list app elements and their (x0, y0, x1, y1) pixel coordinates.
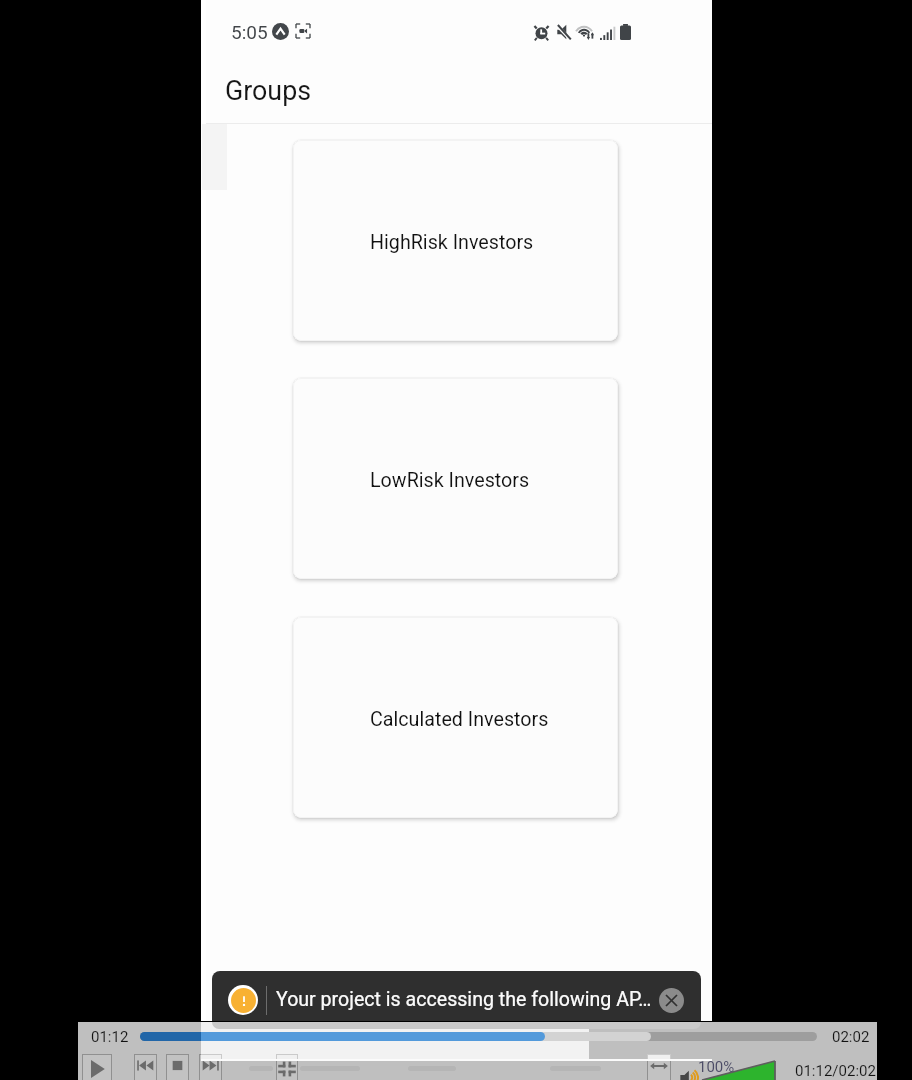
button[interactable]: Play (82, 1054, 112, 1080)
button[interactable]: Next (199, 1054, 222, 1080)
staticText: HighRisk Investors (370, 231, 534, 254)
button[interactable]: Calculated Investors (293, 617, 618, 818)
button[interactable]: Stop (166, 1054, 189, 1080)
button[interactable]: Next (201, 1054, 222, 1060)
staticText: 5:05 (231, 21, 268, 43)
staticText: 01:12 (91, 1028, 129, 1046)
button[interactable]: LowRisk Investors (293, 378, 618, 579)
staticText: 01:12/02:02 (795, 1062, 876, 1080)
button[interactable]: Aspect ratio (647, 1054, 671, 1080)
button[interactable]: Toggle fullscreen (276, 1054, 298, 1060)
button[interactable]: HighRisk Investors (293, 140, 618, 341)
button[interactable]: Aspect ratio (647, 1054, 671, 1060)
staticText: LowRisk Investors (370, 469, 530, 492)
staticText: 100% (698, 1058, 735, 1076)
button[interactable]: Dismiss notification (659, 988, 684, 1013)
button[interactable]: Previous (134, 1054, 157, 1080)
staticText: Groups (225, 75, 312, 106)
staticText: 02:02 (832, 1028, 870, 1046)
button[interactable]: Toggle fullscreen (276, 1054, 298, 1080)
staticText: Calculated Investors (370, 708, 549, 731)
staticText: 100% (698, 1058, 712, 1060)
staticText: Your project is accessing the following … (276, 988, 652, 1011)
